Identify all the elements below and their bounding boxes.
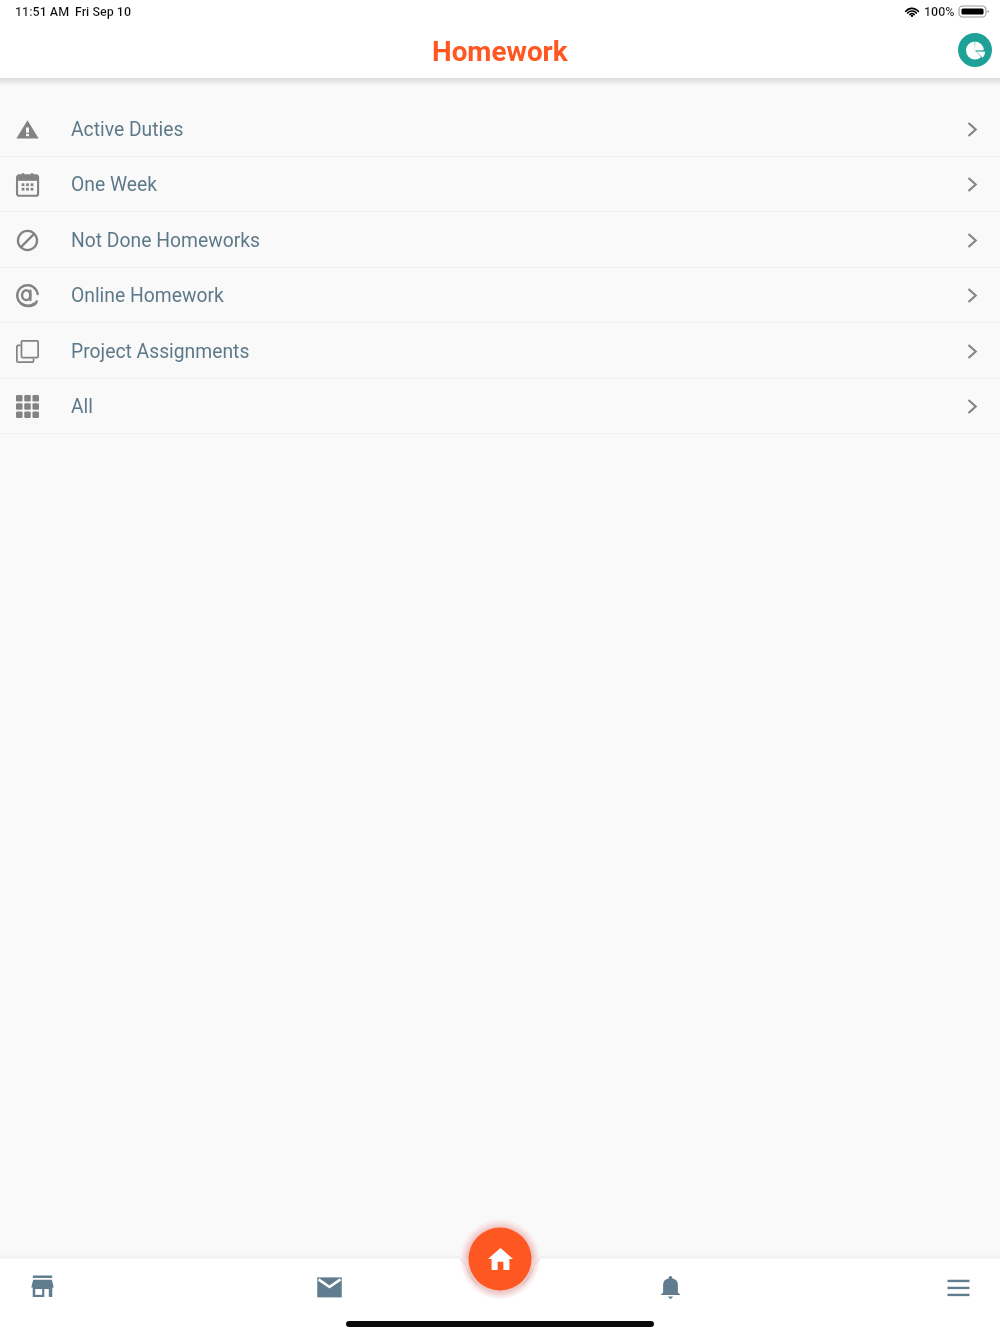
- staticText: One Week: [71, 173, 158, 196]
- staticText: Not Done Homeworks: [71, 229, 260, 252]
- staticText: All: [71, 395, 93, 418]
- staticText: Project Assignments: [71, 340, 250, 363]
- button[interactable]: Project Assignments: [0, 323, 1000, 379]
- button[interactable]: All: [0, 379, 1000, 434]
- button[interactable]: Active Duties: [0, 102, 1000, 157]
- button[interactable]: Online Homework: [0, 268, 1000, 323]
- button[interactable]: One Week: [0, 157, 1000, 212]
- button[interactable]: Statistics: [958, 33, 992, 67]
- button[interactable]: Menu: [930, 1259, 986, 1315]
- staticText: Homework: [432, 35, 568, 68]
- button[interactable]: Home: [469, 1228, 532, 1291]
- staticText: 11:51 AM: [15, 4, 70, 19]
- button[interactable]: Mail: [301, 1259, 357, 1315]
- button[interactable]: Shop: [14, 1259, 70, 1315]
- staticText: Active Duties: [71, 118, 184, 141]
- staticText: 100%: [924, 4, 955, 19]
- staticText: Fri Sep 10: [75, 4, 132, 19]
- button[interactable]: Not Done Homeworks: [0, 212, 1000, 268]
- button[interactable]: Notifications: [642, 1259, 698, 1315]
- staticText: Online Homework: [71, 284, 224, 307]
